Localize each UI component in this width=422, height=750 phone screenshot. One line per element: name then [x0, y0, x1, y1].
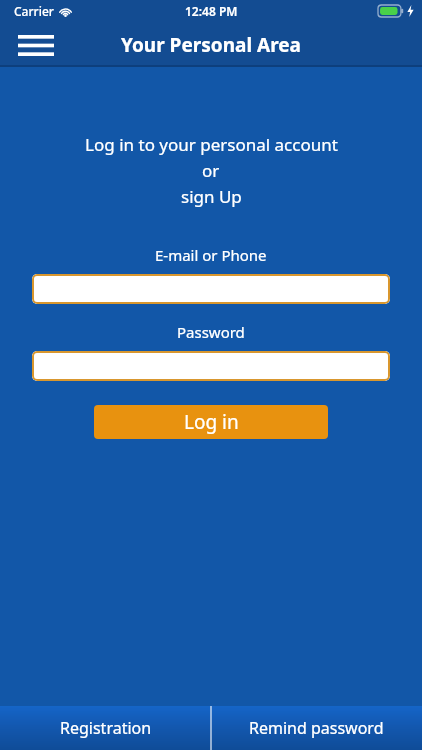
staticText: Remind password	[249, 717, 384, 739]
staticText: 12:48 PM	[185, 3, 238, 19]
button[interactable]: Menu	[10, 25, 62, 65]
button[interactable]: Remind password	[211, 706, 422, 750]
staticText: Log in	[184, 409, 239, 435]
button[interactable]	[32, 274, 390, 304]
staticText: Password	[177, 322, 245, 342]
staticText: E-mail or Phone	[155, 245, 267, 265]
staticText: Your Personal Area	[121, 32, 301, 58]
staticText: Carrier	[14, 3, 54, 19]
staticText: Registration	[60, 717, 152, 739]
button[interactable]: Log in	[94, 405, 328, 439]
staticText: Log in to your personal account	[85, 133, 338, 156]
staticText: or	[202, 159, 220, 182]
button[interactable]	[32, 351, 390, 381]
button[interactable]: Registration	[0, 706, 211, 750]
staticText: sign Up	[181, 185, 242, 208]
